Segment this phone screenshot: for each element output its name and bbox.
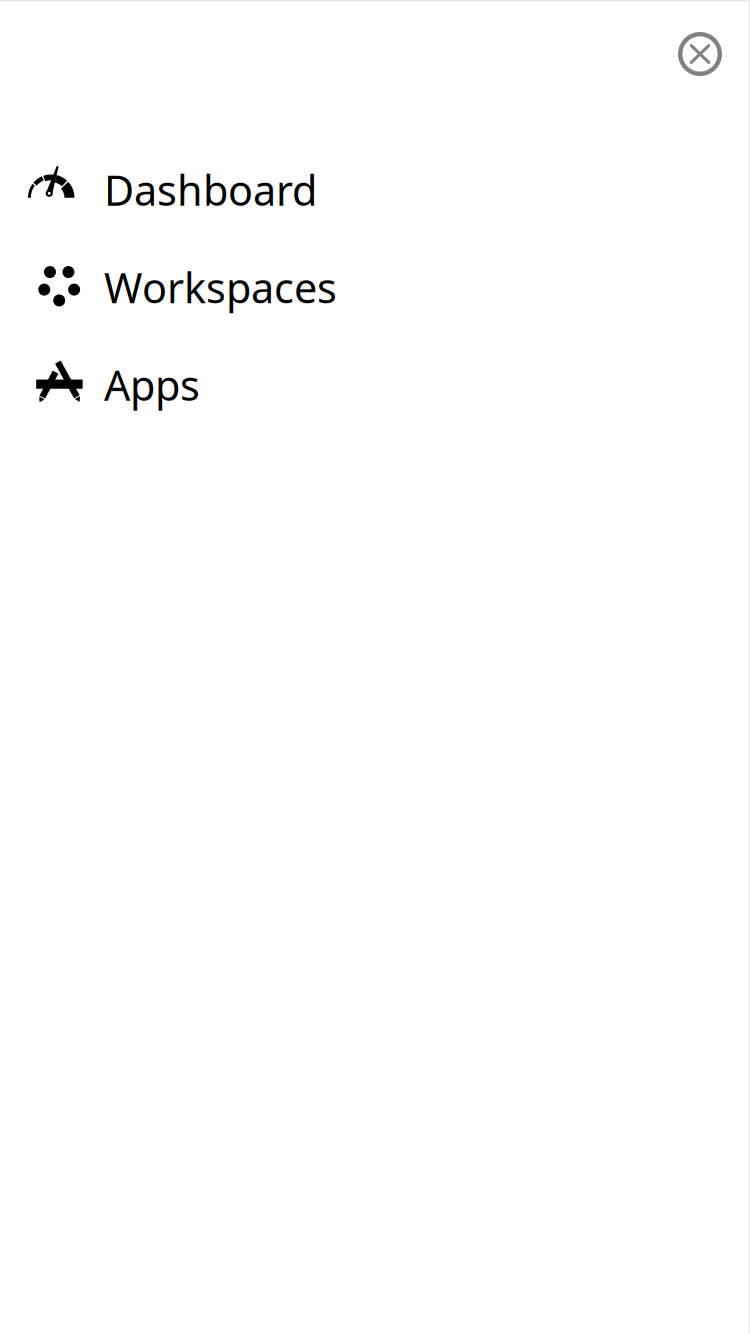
staticText: Dashboard: [104, 162, 317, 217]
button[interactable]: Close: [670, 24, 730, 84]
staticText: Apps: [104, 357, 200, 412]
button[interactable]: Dashboard: [0, 141, 750, 238]
staticText: Workspaces: [104, 260, 337, 315]
button[interactable]: Apps: [0, 336, 750, 433]
button[interactable]: Workspaces: [0, 238, 750, 336]
